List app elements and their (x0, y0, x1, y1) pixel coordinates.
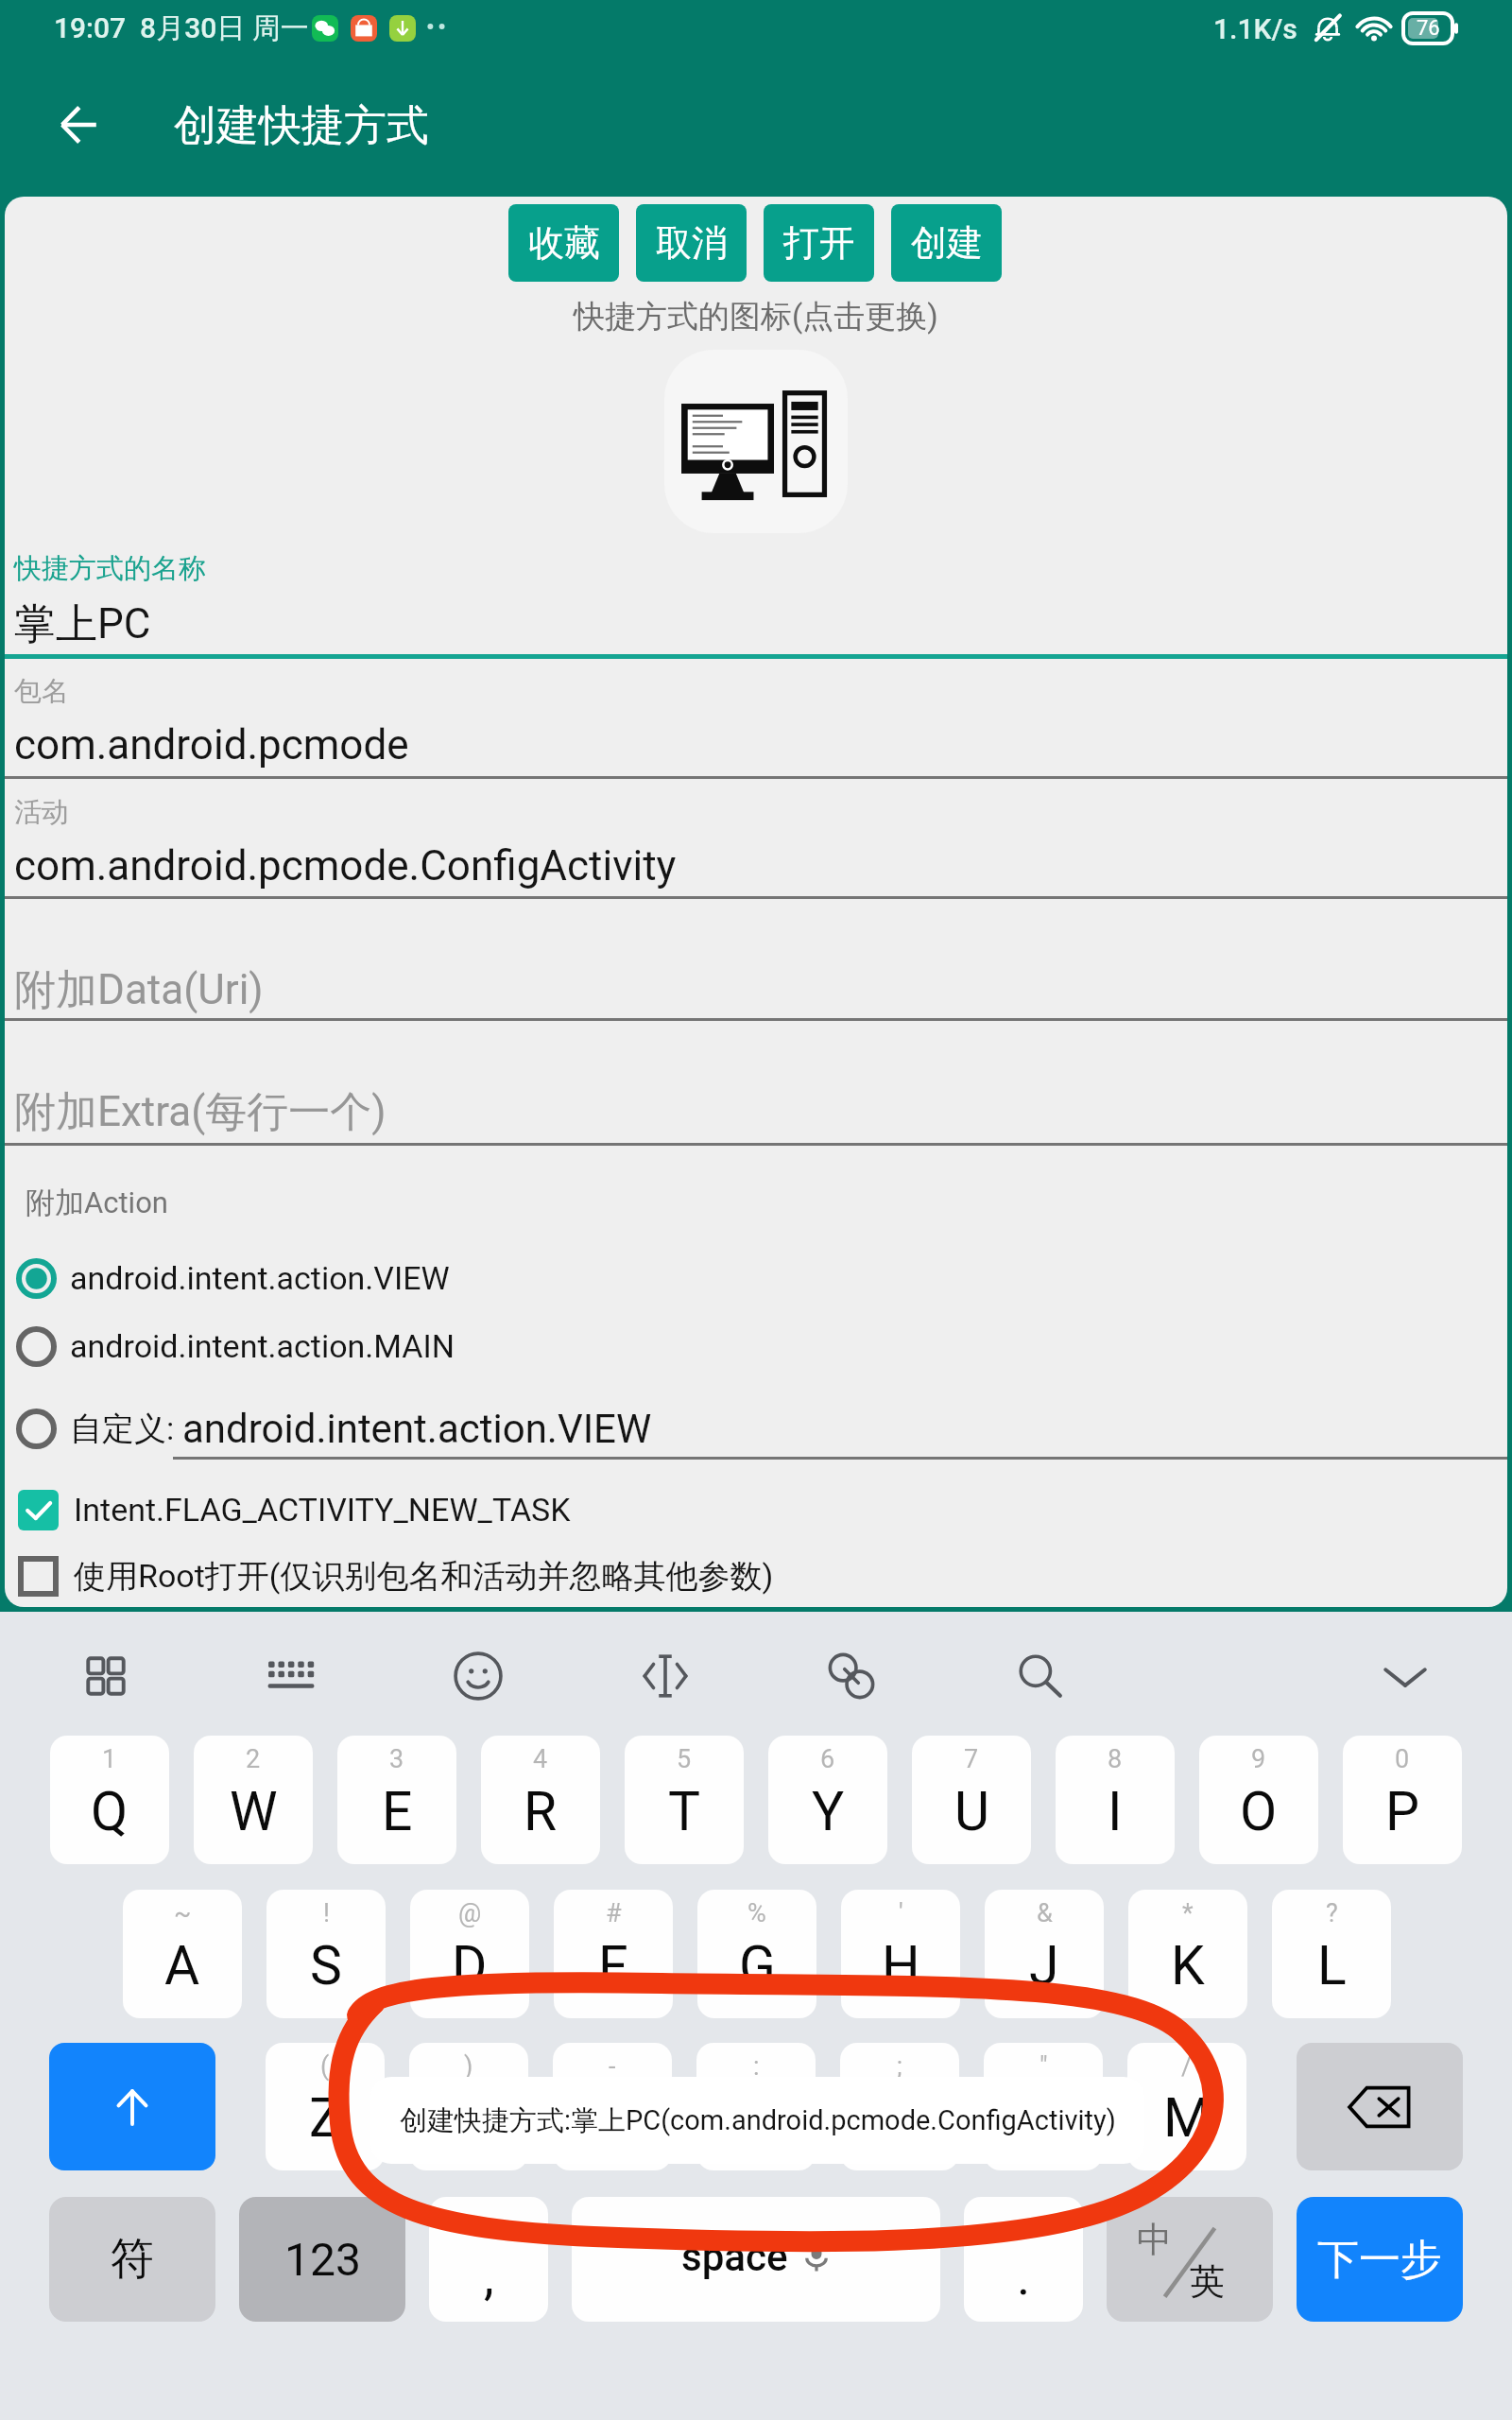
button[interactable]: ~ (123, 1890, 242, 2018)
button[interactable]: ( (266, 2043, 385, 2170)
button[interactable]: Search (1004, 1640, 1075, 1712)
button[interactable]: % (697, 1890, 816, 2018)
button[interactable]: 收藏 (508, 204, 619, 282)
staticText: V (739, 2086, 774, 2150)
button[interactable]: 符 (49, 2197, 215, 2322)
staticText: C (594, 2086, 630, 2150)
button[interactable]: ' (841, 1890, 960, 2018)
staticText: 收藏 (528, 220, 600, 266)
button[interactable]: / (1127, 2043, 1246, 2170)
button[interactable]: 123 (239, 2197, 405, 2322)
button[interactable]: ; (840, 2043, 959, 2170)
staticText: D (452, 1934, 488, 1997)
button[interactable]: 4 (481, 1736, 600, 1864)
staticText: android.intent.action.VIEW (182, 1406, 652, 1452)
button[interactable]: # (554, 1890, 673, 2018)
staticText: @ (458, 1898, 482, 1928)
button[interactable]: 创建 (891, 204, 1002, 282)
staticText: com.android.pcmode.ConfigActivity (14, 841, 677, 890)
staticText: U (954, 1780, 989, 1843)
staticText: J (1029, 1934, 1059, 1997)
staticText: Intent.FLAG_ACTIVITY_NEW_TASK (74, 1491, 571, 1529)
staticText: 掌上PC (14, 598, 151, 650)
button[interactable]: * (1128, 1890, 1247, 2018)
staticText: 123 (284, 2233, 361, 2286)
staticText: W (230, 1780, 278, 1843)
button[interactable]: android.intent.action.MAIN (5, 1318, 1507, 1374)
button[interactable]: ) (409, 2043, 528, 2170)
button[interactable]: & (985, 1890, 1104, 2018)
button[interactable]: Backspace (1297, 2043, 1463, 2170)
staticText: I (1108, 1780, 1123, 1843)
staticText: 3 (389, 1744, 404, 1774)
staticText: G (739, 1934, 776, 1997)
staticText: : (753, 2051, 760, 2082)
button[interactable]: : (696, 2043, 816, 2170)
button[interactable]: ? (1272, 1890, 1391, 2018)
staticText: 快捷方式的图标(点击更换) (574, 297, 938, 337)
staticText: 创建快捷方式:掌上PC(com.android.pcmode.ConfigAct… (400, 2103, 1116, 2138)
button[interactable]: Keyboard (255, 1640, 327, 1712)
staticText: android.intent.action.VIEW (70, 1259, 450, 1297)
staticText: ! (323, 1898, 330, 1928)
staticText: 1 (102, 1744, 117, 1774)
staticText: . (1017, 2247, 1031, 2307)
button[interactable]: space (572, 2197, 940, 2322)
button[interactable]: 使用Root打开(仅识别包名和活动并忽略其他参数) (5, 1547, 1507, 1604)
staticText: android.intent.action.MAIN (70, 1327, 455, 1365)
button[interactable]: " (984, 2043, 1103, 2170)
button[interactable]: Shortcut icon (664, 350, 848, 533)
staticText: 1.1K/s (1213, 12, 1297, 45)
staticText: 0 (1395, 1744, 1410, 1774)
button[interactable]: 打开 (764, 204, 874, 282)
button[interactable]: 2 (194, 1736, 313, 1864)
button[interactable]: Hide keyboard (1369, 1640, 1441, 1712)
button[interactable]: 9 (1199, 1736, 1318, 1864)
button[interactable]: Emoji (442, 1640, 514, 1712)
staticText: space (681, 2234, 788, 2280)
staticText: M (1163, 2086, 1211, 2150)
button[interactable]: 下一步 (1297, 2197, 1463, 2322)
staticText: com.android.pcmode (14, 720, 409, 769)
button[interactable]: - (553, 2043, 672, 2170)
staticText: 符 (111, 2232, 154, 2287)
staticText: 中 (1137, 2218, 1172, 2262)
button[interactable]: 创建快捷方式:掌上PC(com.android.pcmode.ConfigAct… (370, 2077, 1144, 2164)
staticText: - (609, 2051, 616, 2082)
button[interactable]: 6 (768, 1736, 887, 1864)
button[interactable]: 8 (1056, 1736, 1175, 1864)
button[interactable]: Link (816, 1640, 887, 1712)
button[interactable]: 自定义: (5, 1400, 1507, 1457)
button[interactable]: android.intent.action.VIEW (5, 1250, 1507, 1306)
button[interactable]: ! (266, 1890, 386, 2018)
button[interactable]: 0 (1343, 1736, 1462, 1864)
staticText: , (484, 2247, 494, 2307)
button[interactable]: 7 (912, 1736, 1031, 1864)
staticText: ; (897, 2051, 902, 2082)
staticText: 下一步 (1317, 2234, 1442, 2286)
button[interactable]: Apps (70, 1640, 142, 1712)
button[interactable]: , (429, 2197, 548, 2322)
staticText: 取消 (656, 220, 728, 266)
staticText: ) (464, 2051, 473, 2082)
button[interactable]: 中 (1107, 2197, 1273, 2322)
staticText: % (747, 1898, 766, 1928)
staticText: X (452, 2086, 486, 2150)
button[interactable]: 3 (337, 1736, 456, 1864)
staticText: L (1317, 1934, 1347, 1997)
button[interactable]: . (964, 2197, 1083, 2322)
staticText: 19:07 8月30日 周一 (54, 10, 309, 46)
button[interactable]: @ (410, 1890, 529, 2018)
button[interactable]: Intent.FLAG_ACTIVITY_NEW_TASK (5, 1481, 1507, 1538)
staticText: Z (309, 2086, 342, 2150)
button[interactable]: Cursor (629, 1640, 701, 1712)
button[interactable]: Back (39, 85, 118, 164)
staticText: 7 (964, 1744, 979, 1774)
button[interactable]: Shift (49, 2043, 215, 2170)
staticText: " (1039, 2051, 1048, 2082)
button[interactable]: 5 (625, 1736, 744, 1864)
staticText: 5 (677, 1744, 692, 1774)
button[interactable]: 1 (50, 1736, 169, 1864)
button[interactable]: 取消 (636, 204, 747, 282)
staticText: 6 (820, 1744, 835, 1774)
